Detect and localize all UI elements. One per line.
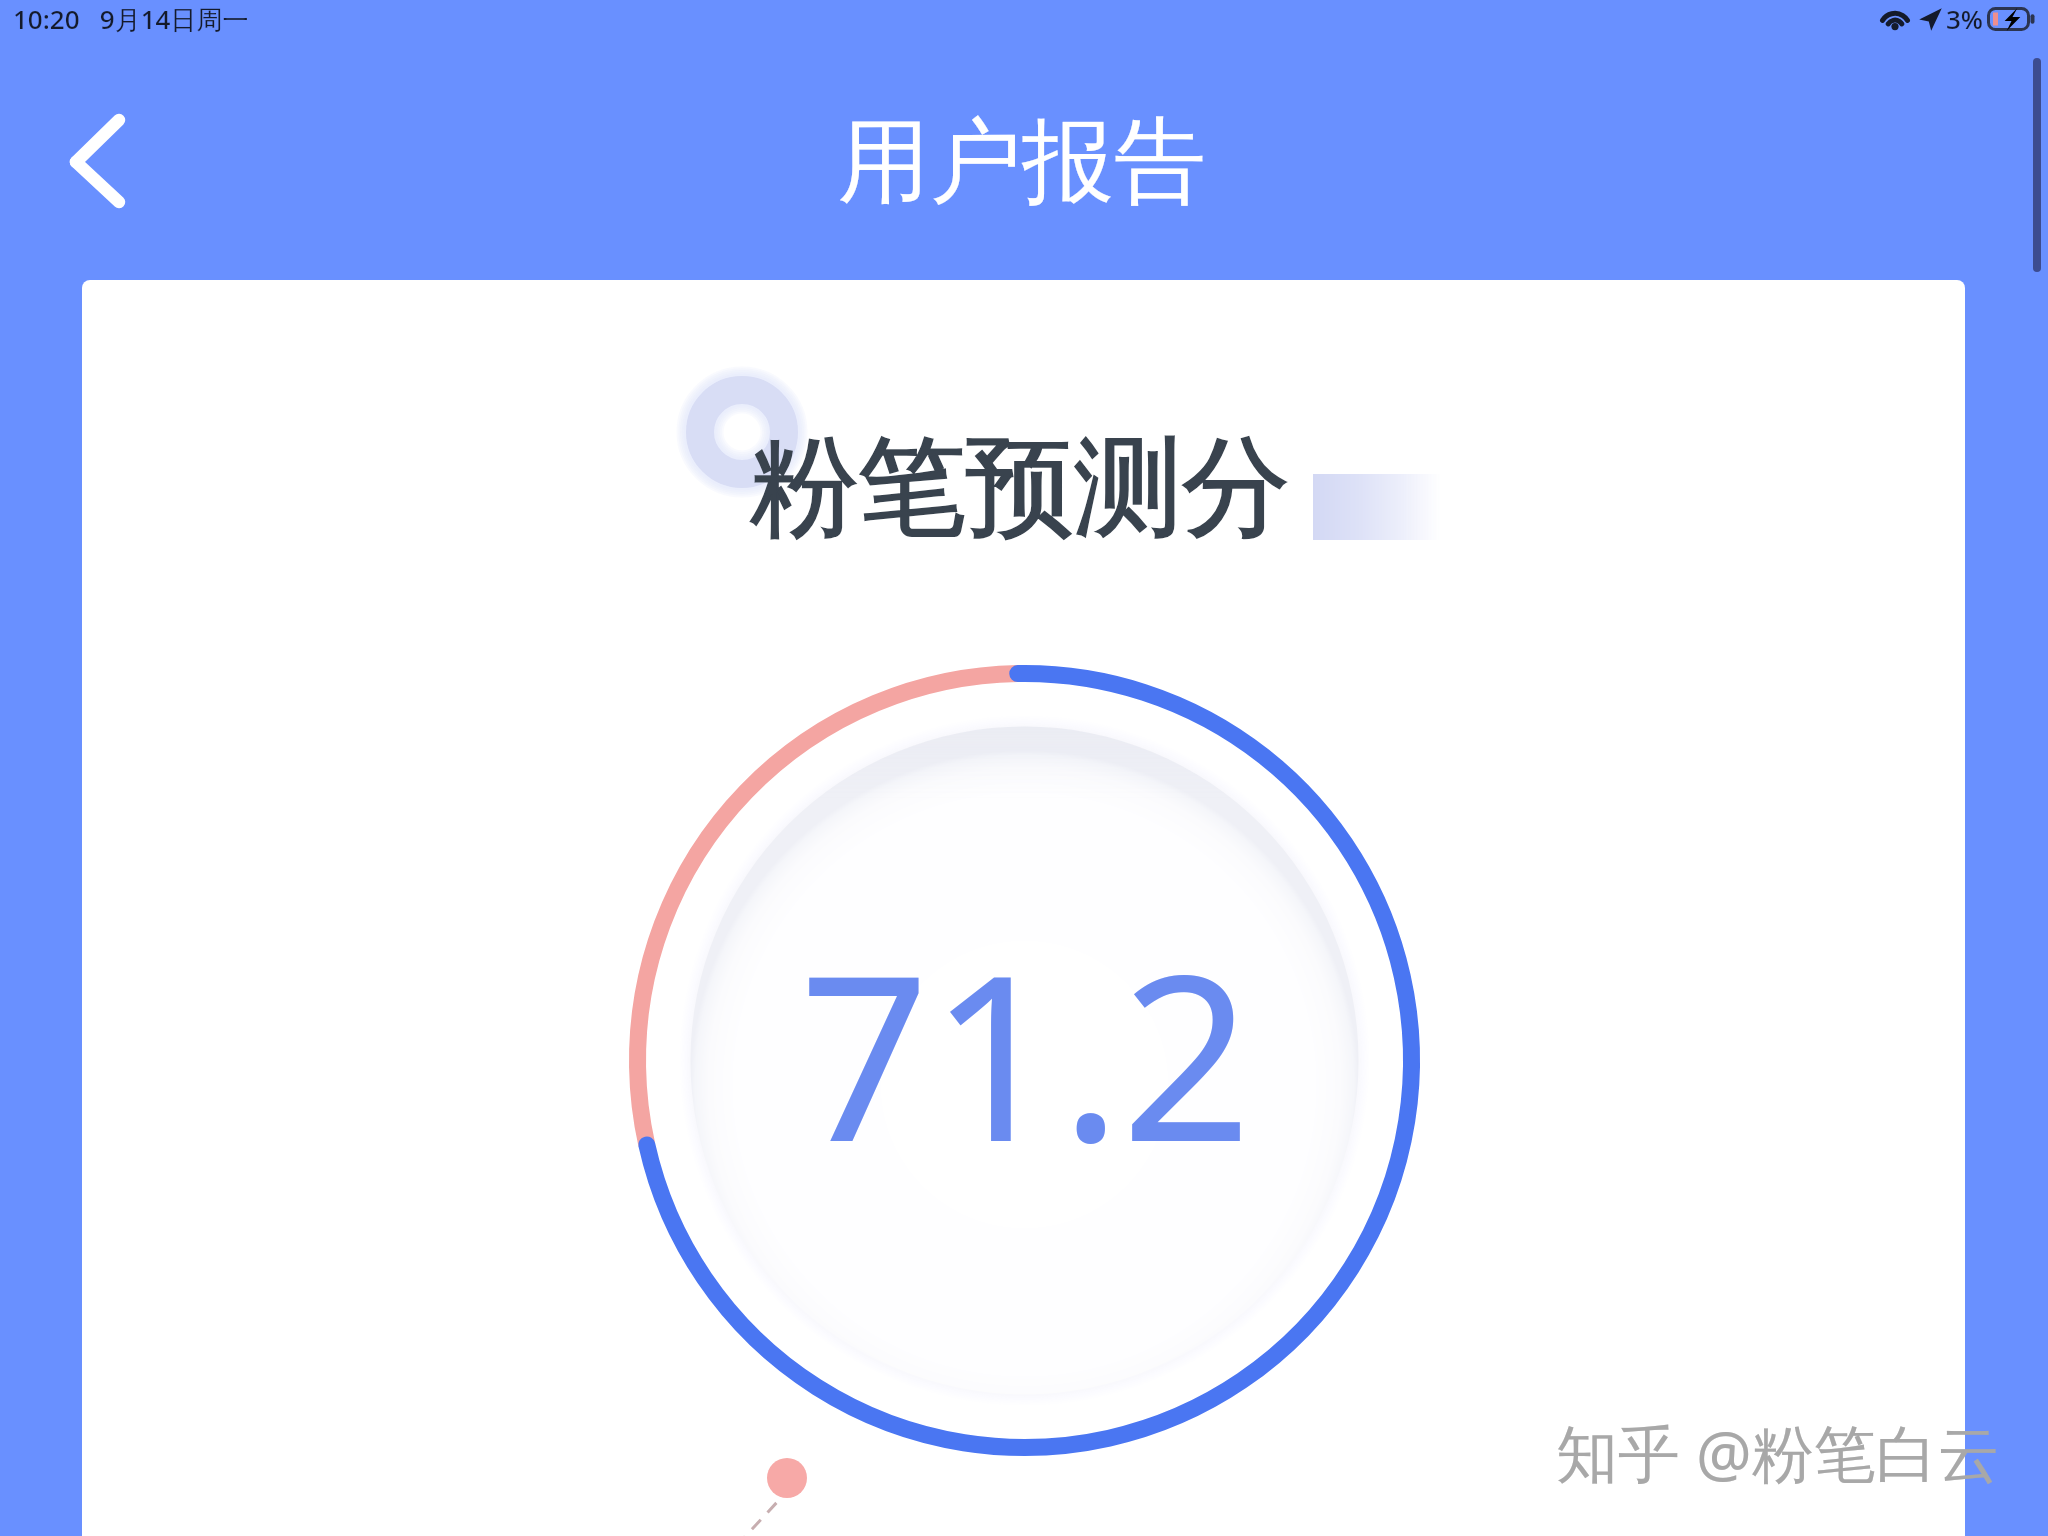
staticText: 用户报告 — [838, 104, 1206, 220]
button[interactable]: Back — [30, 90, 160, 232]
staticText: 71.2 — [799, 897, 1252, 1208]
staticText: 粉笔预测分 — [750, 420, 1290, 556]
staticText: 知乎 @粉笔白云 — [1556, 1410, 2000, 1495]
staticText: 粉笔预测分 — [750, 420, 1290, 556]
staticText: 3% — [1946, 1, 1984, 36]
staticText: 10:20 9月14日周一 — [13, 1, 249, 37]
